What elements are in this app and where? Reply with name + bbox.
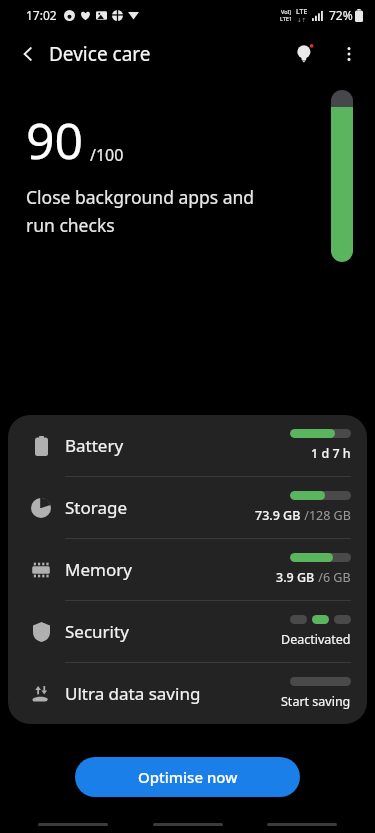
- staticText: Close background apps and run checks: [26, 185, 255, 237]
- button[interactable]: Tips: [283, 32, 327, 76]
- staticText: LTE: [296, 7, 308, 17]
- staticText: /128 GB: [301, 507, 351, 524]
- staticText: LTE1: [280, 15, 293, 22]
- staticText: 90: [26, 106, 84, 174]
- staticText: 72%: [329, 7, 353, 23]
- staticText: Device care: [49, 41, 151, 67]
- button[interactable]: Optimise now: [75, 757, 300, 797]
- staticText: ↓↑: [297, 17, 307, 23]
- staticText: Storage: [65, 496, 128, 519]
- button[interactable]: Storage: [8, 477, 367, 538]
- button[interactable]: Battery: [8, 415, 367, 476]
- button[interactable]: More options: [327, 32, 371, 76]
- button[interactable]: Ultra data saving: [8, 663, 367, 724]
- button[interactable]: Security: [8, 601, 367, 662]
- staticText: Optimise now: [138, 767, 238, 787]
- button[interactable]: Back: [8, 34, 48, 74]
- staticText: Memory: [65, 558, 132, 581]
- staticText: /6 GB: [315, 569, 351, 586]
- staticText: Security: [65, 620, 129, 643]
- staticText: /100: [90, 144, 124, 166]
- button[interactable]: Memory: [8, 539, 367, 600]
- staticText: Deactivated: [281, 631, 351, 648]
- staticText: Start saving: [281, 693, 351, 710]
- staticText: 17:02: [26, 7, 57, 23]
- staticText: VoI): [281, 8, 292, 15]
- staticText: Ultra data saving: [65, 682, 201, 705]
- staticText: 73.9 GB: [255, 507, 301, 524]
- staticText: 1 d 7 h: [311, 445, 351, 462]
- staticText: Battery: [65, 434, 124, 457]
- staticText: 3.9 GB: [276, 569, 315, 586]
